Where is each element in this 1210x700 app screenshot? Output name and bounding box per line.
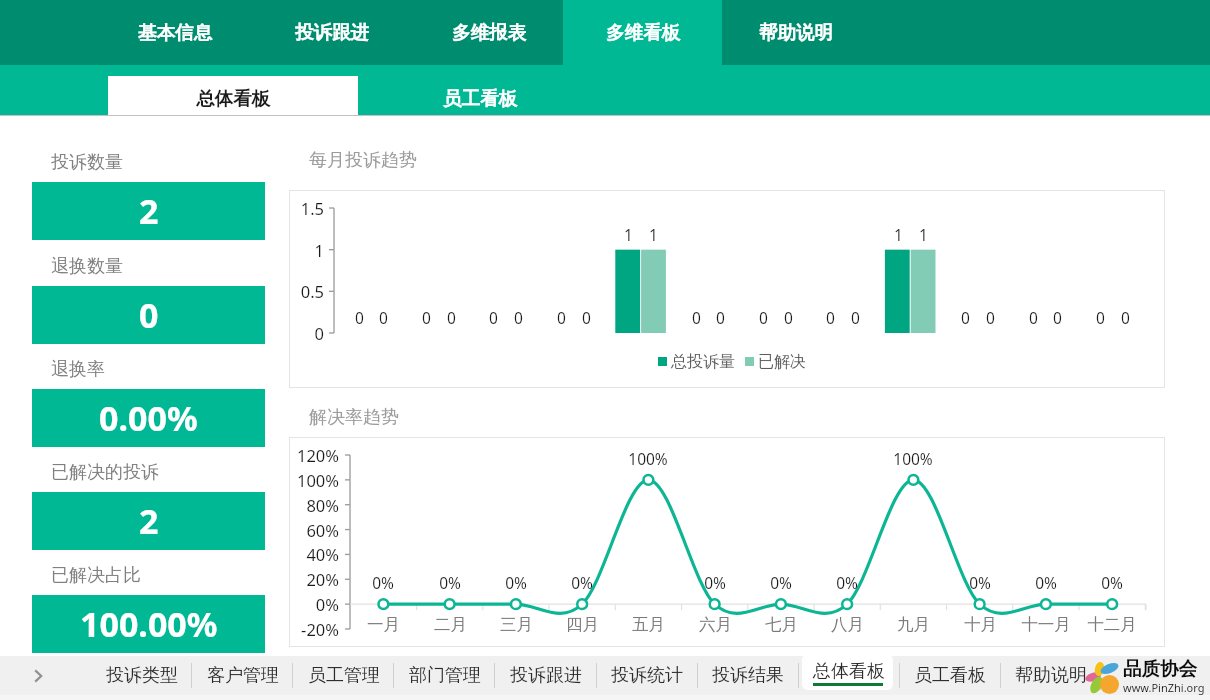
button[interactable]: 帮助说明 (716, 0, 875, 65)
staticText: 投诉跟进 (295, 21, 369, 44)
staticText: 100% (893, 448, 933, 469)
staticText: 0 (447, 307, 456, 328)
button[interactable]: 投诉结果 (698, 656, 797, 695)
staticText: 1 (314, 239, 324, 261)
staticText: -20% (301, 618, 339, 640)
staticText: 已解决占比 (51, 564, 141, 587)
staticText: 0 (514, 307, 523, 328)
staticText: 五月 (632, 614, 665, 635)
staticText: 0 (784, 307, 793, 328)
button[interactable]: 2 (32, 182, 265, 240)
staticText: 六月 (699, 614, 732, 635)
button[interactable]: 投诉类型 (92, 656, 191, 695)
staticText: 员工看板 (914, 664, 986, 687)
staticText: 退换数量 (51, 255, 123, 278)
button[interactable]: 投诉跟进 (496, 656, 595, 695)
staticText: 品质协会 (1123, 657, 1197, 680)
button[interactable]: 多维看板 (563, 0, 722, 65)
staticText: 0.5 (300, 280, 324, 302)
button[interactable]: 帮助说明 (1001, 656, 1100, 695)
button[interactable] (802, 654, 893, 690)
staticText: 十月 (964, 614, 997, 635)
staticText: 0 (139, 292, 159, 338)
staticText: 九月 (897, 614, 930, 635)
button[interactable]: 2 (32, 492, 265, 550)
staticText: 多维看板 (606, 21, 680, 44)
staticText: 0% (969, 572, 991, 593)
staticText: 0.00% (99, 395, 198, 441)
button[interactable]: 员工看板 (390, 76, 570, 115)
staticText: 0 (355, 307, 364, 328)
staticText: 0% (704, 572, 726, 593)
button[interactable]: 基本信息 (95, 0, 254, 65)
staticText: 多维报表 (452, 21, 526, 44)
staticText: 0 (826, 307, 835, 328)
staticText: 0 (759, 307, 768, 328)
staticText: 1 (649, 224, 658, 245)
staticText: 每月投诉趋势 (309, 149, 417, 172)
staticText: 0 (851, 307, 860, 328)
staticText: 0 (489, 307, 498, 328)
staticText: 40% (306, 543, 339, 565)
staticText: 帮助说明 (1015, 664, 1087, 687)
button[interactable]: 100.00% (32, 595, 265, 653)
button[interactable]: 员工看板 (900, 656, 999, 695)
staticText: 0% (372, 572, 394, 593)
staticText: 0 (314, 322, 324, 344)
staticText: 100% (628, 448, 668, 469)
staticText: 0 (582, 307, 591, 328)
staticText: 0% (770, 572, 792, 593)
staticText: 0% (1035, 572, 1057, 593)
staticText: 总体看板 (196, 87, 270, 110)
staticText: 60% (306, 519, 339, 541)
button[interactable]: 投诉统计 (597, 656, 696, 695)
staticText: 0 (1053, 307, 1062, 328)
staticText: 0 (986, 307, 995, 328)
staticText: 1 (624, 224, 633, 245)
staticText: 四月 (566, 614, 599, 635)
staticText: 投诉数量 (51, 151, 123, 174)
staticText: 十一月 (1021, 614, 1071, 635)
staticText: 员工看板 (443, 87, 517, 110)
staticText: 八月 (831, 614, 864, 635)
staticText: 0 (1121, 307, 1130, 328)
button[interactable]: 员工管理 (294, 656, 393, 695)
staticText: 1.5 (300, 197, 324, 219)
staticText: 0% (571, 572, 593, 593)
staticText: 已解决的投诉 (51, 461, 159, 484)
button[interactable]: 多维报表 (409, 0, 568, 65)
staticText: 0% (315, 593, 339, 615)
button[interactable]: 客户管理 (193, 656, 292, 695)
staticText: 退换率 (51, 358, 105, 381)
button[interactable]: 投诉跟进 (252, 0, 411, 65)
staticText: 帮助说明 (759, 21, 833, 44)
staticText: 2 (139, 188, 159, 234)
staticText: 员工管理 (308, 664, 380, 687)
button[interactable]: 0 (32, 286, 265, 344)
staticText: 0 (379, 307, 388, 328)
staticText: 1 (919, 224, 928, 245)
staticText: 部门管理 (409, 664, 481, 687)
staticText: 80% (306, 494, 339, 516)
button[interactable]: 部门管理 (395, 656, 494, 695)
staticText: 总投诉量 (671, 352, 735, 372)
staticText: 100.00% (80, 601, 218, 647)
staticText: 0 (422, 307, 431, 328)
staticText: 0% (836, 572, 858, 593)
staticText: 一月 (367, 614, 400, 635)
staticText: 三月 (500, 614, 533, 635)
staticText: 0% (1101, 572, 1123, 593)
staticText: 已解决 (758, 352, 806, 372)
staticText: 0 (1096, 307, 1105, 328)
button[interactable]: 总体看板 (799, 656, 898, 695)
button[interactable]: Next (14, 656, 62, 695)
button[interactable]: 总体看板 (108, 76, 358, 115)
button[interactable]: 0.00% (32, 389, 265, 447)
staticText: 0 (692, 307, 701, 328)
staticText: 100% (296, 469, 339, 491)
staticText: 0 (1029, 307, 1038, 328)
staticText: 0% (439, 572, 461, 593)
staticText: 0% (505, 572, 527, 593)
staticText: 十二月 (1087, 614, 1137, 635)
staticText: 投诉类型 (106, 664, 178, 687)
